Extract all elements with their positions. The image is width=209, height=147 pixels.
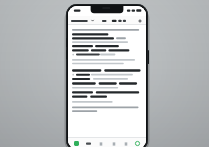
- button[interactable]: Document: [73, 140, 80, 147]
- button[interactable]: Font size: [100, 18, 109, 23]
- button[interactable]: Comment: [97, 140, 104, 147]
- button[interactable]: [68, 25, 146, 137]
- button[interactable]: Keyboard: [85, 140, 92, 147]
- button[interactable]: Account: [134, 140, 141, 147]
- button[interactable]: Font family: [71, 18, 98, 23]
- button[interactable]: Text style: [111, 18, 127, 23]
- button[interactable]: Add: [136, 17, 143, 24]
- button[interactable]: Share: [110, 140, 117, 147]
- button[interactable]: More: [122, 140, 129, 147]
